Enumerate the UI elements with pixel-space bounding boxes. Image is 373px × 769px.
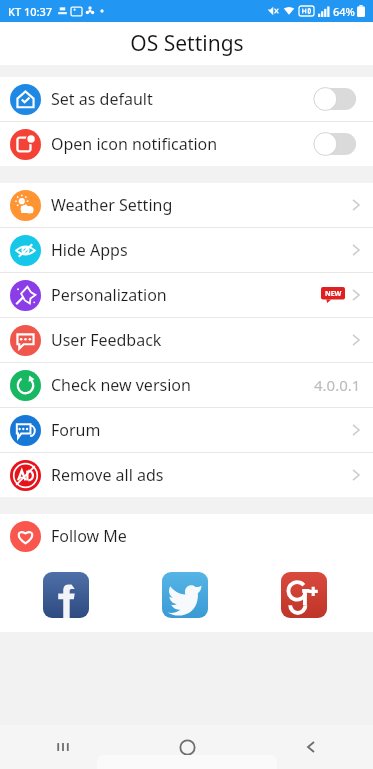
button[interactable]: Remove all ads bbox=[0, 453, 373, 497]
button[interactable]: Toggle bbox=[311, 86, 359, 112]
button[interactable]: Toggle bbox=[311, 131, 359, 157]
staticText: Weather Setting bbox=[51, 194, 173, 216]
button[interactable]: Forum bbox=[0, 408, 373, 452]
button[interactable]: Google Plus bbox=[281, 572, 327, 618]
button[interactable]: Recents bbox=[0, 725, 125, 769]
staticText: Set as default bbox=[51, 88, 153, 110]
button[interactable]: Weather Setting bbox=[0, 183, 373, 227]
button[interactable]: Personalization bbox=[0, 273, 373, 317]
button[interactable]: Follow Me bbox=[0, 514, 373, 558]
staticText: KT 10:37 bbox=[8, 4, 53, 19]
staticText: 64% bbox=[333, 4, 355, 19]
staticText: User Feedback bbox=[51, 329, 162, 351]
staticText: Remove all ads bbox=[51, 464, 164, 486]
button[interactable]: Hide Apps bbox=[0, 228, 373, 272]
staticText: Open icon notification bbox=[51, 133, 218, 155]
button[interactable]: Check new version bbox=[0, 363, 373, 407]
staticText: Forum bbox=[51, 419, 101, 441]
staticText: Check new version bbox=[51, 374, 191, 396]
button[interactable]: Open icon notification bbox=[0, 122, 373, 166]
button[interactable]: Twitter bbox=[162, 572, 208, 618]
button[interactable]: Home bbox=[125, 725, 249, 769]
staticText: NEW bbox=[325, 289, 342, 299]
staticText: Personalization bbox=[51, 284, 167, 306]
button[interactable]: Set as default bbox=[0, 77, 373, 121]
button[interactable]: Facebook bbox=[43, 572, 89, 618]
button[interactable]: User Feedback bbox=[0, 318, 373, 362]
staticText: OS Settings bbox=[130, 29, 244, 58]
button[interactable]: Back bbox=[249, 725, 373, 769]
staticText: Hide Apps bbox=[51, 239, 128, 261]
staticText: Follow Me bbox=[51, 525, 127, 547]
staticText: 4.0.0.1 bbox=[314, 375, 361, 395]
